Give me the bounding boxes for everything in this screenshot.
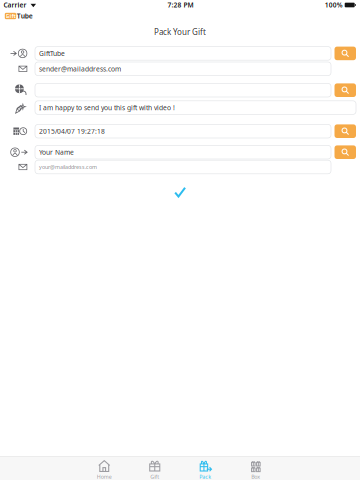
staticText: Gift: [5, 12, 15, 20]
button[interactable]: Confirm: [158, 185, 202, 199]
staticText: Gift: [150, 473, 159, 480]
button[interactable]: Box: [230, 457, 281, 480]
staticText: 2015/04/07 19:27:18: [39, 127, 105, 136]
button[interactable]: Pack: [180, 457, 230, 480]
staticText: your@mailaddress.com: [39, 163, 97, 171]
staticText: Your Name: [39, 148, 74, 157]
button[interactable]: GiftTube: [0, 10, 33, 22]
staticText: sender@mailaddress.com: [39, 64, 121, 73]
staticText: Pack: [199, 473, 211, 480]
button[interactable]: Gift: [129, 457, 180, 480]
staticText: 7:28 PM: [167, 1, 193, 9]
staticText: 100%: [325, 1, 343, 9]
staticText: GiftTube: [39, 49, 65, 58]
staticText: I am happy to send you this gift with vi…: [39, 103, 175, 112]
staticText: Home: [97, 473, 112, 480]
button[interactable]: Search: [334, 145, 356, 159]
staticText: Carrier: [3, 1, 26, 9]
staticText: Tube: [17, 12, 33, 20]
staticText: Pack Your Gift: [154, 27, 206, 37]
button[interactable]: Search: [334, 124, 356, 138]
button[interactable]: Search: [334, 47, 356, 60]
button[interactable]: Home: [79, 457, 129, 480]
staticText: Box: [251, 473, 260, 480]
button[interactable]: Search: [334, 83, 356, 97]
